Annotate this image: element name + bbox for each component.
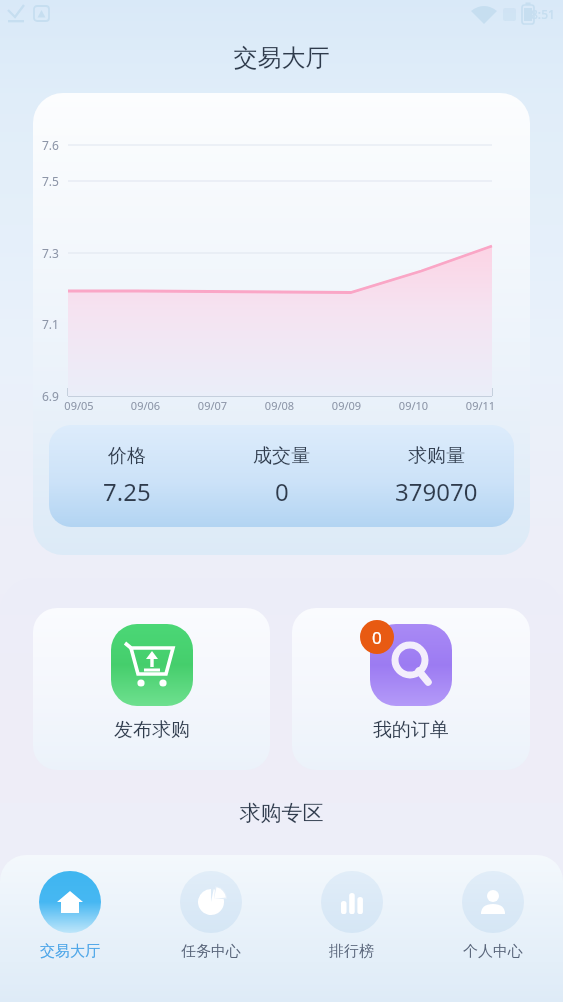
- staticText: 0: [275, 475, 289, 508]
- staticText: 排行榜: [329, 942, 374, 961]
- staticText: 8:51: [531, 6, 555, 22]
- staticText: 任务中心: [181, 942, 241, 961]
- staticText: 09/07: [179, 398, 246, 413]
- staticText: 7.5: [42, 173, 59, 189]
- staticText: 379070: [395, 475, 478, 508]
- staticText: 个人中心: [463, 942, 523, 961]
- other: 排行榜: [336, 886, 368, 918]
- staticText: 7.25: [103, 475, 151, 508]
- other: 个人中心: [477, 886, 509, 918]
- other: 交易大厅: [54, 886, 86, 918]
- staticText: 求购专区: [0, 800, 563, 826]
- staticText: 求购量: [408, 444, 465, 468]
- button[interactable]: 任务中心: [140, 855, 281, 1002]
- staticText: 0: [372, 626, 382, 649]
- staticText: 7.3: [42, 245, 59, 261]
- staticText: 交易大厅: [40, 942, 100, 961]
- other: 任务中心: [195, 886, 227, 918]
- staticText: 成交量: [253, 444, 310, 468]
- staticText: 价格: [108, 444, 146, 468]
- staticText: 09/08: [246, 398, 313, 413]
- button[interactable]: 发布求购: [33, 608, 270, 770]
- staticText: 09/06: [112, 398, 179, 413]
- staticText: 7.1: [42, 316, 59, 332]
- staticText: 6.9: [42, 388, 59, 404]
- staticText: 我的订单: [373, 718, 449, 742]
- staticText: 7.6: [42, 137, 59, 153]
- staticText: 09/05: [46, 398, 112, 413]
- staticText: 09/10: [380, 398, 447, 413]
- staticText: 09/09: [313, 398, 380, 413]
- button[interactable]: 排行榜: [281, 855, 422, 1002]
- staticText: 交易大厅: [0, 43, 563, 73]
- staticText: 09/11: [447, 398, 514, 413]
- button[interactable]: 个人中心: [422, 855, 563, 1002]
- button[interactable]: 交易大厅: [0, 855, 140, 1002]
- button[interactable]: 0: [292, 608, 530, 770]
- staticText: 发布求购: [114, 718, 190, 742]
